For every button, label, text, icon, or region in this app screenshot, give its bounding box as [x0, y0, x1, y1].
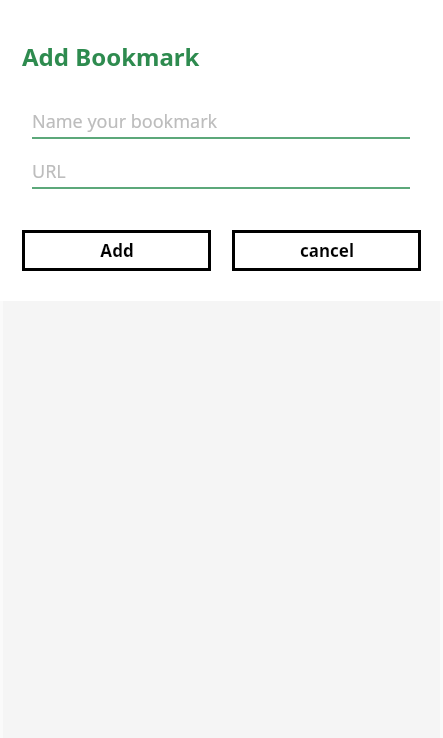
button[interactable]: cancel — [232, 230, 421, 271]
button[interactable]: Add — [22, 230, 211, 271]
button[interactable]: URL — [32, 155, 410, 189]
staticText: cancel — [300, 239, 354, 262]
staticText: Name your bookmark — [32, 109, 218, 134]
staticText: URL — [32, 159, 66, 184]
button[interactable]: Name your bookmark — [32, 105, 410, 139]
staticText: Add — [100, 239, 134, 262]
staticText: Add Bookmark — [22, 40, 200, 73]
